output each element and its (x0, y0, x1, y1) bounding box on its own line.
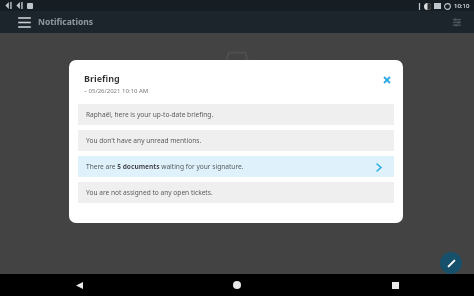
staticText: – 05/26/2021 10:10 AM (84, 87, 149, 95)
button[interactable]: Raphaël, here is your up-to-date briefin… (78, 104, 394, 125)
button[interactable]: Filter notifications (448, 13, 466, 31)
staticText: You don't have any unread mentions. (86, 136, 202, 145)
button[interactable]: You are not assigned to any open tickets… (78, 182, 394, 203)
staticText: Notifications (38, 16, 94, 28)
button[interactable]: Open navigation menu (14, 12, 34, 32)
button[interactable]: Compose (440, 252, 462, 274)
staticText: You are not assigned to any open tickets… (86, 188, 213, 197)
staticText: Briefing (84, 72, 120, 84)
button[interactable]: Home (158, 274, 316, 296)
button[interactable]: Back (0, 274, 158, 296)
button[interactable]: There are 5 documents waiting for your s… (78, 156, 394, 177)
staticText: 10:10 (454, 2, 470, 10)
button[interactable]: Recent apps (316, 274, 474, 296)
staticText: Raphaël, here is your up-to-date briefin… (86, 110, 214, 119)
button[interactable]: You don't have any unread mentions. (78, 130, 394, 151)
staticText: There are 5 documents waiting for your s… (86, 162, 244, 171)
button[interactable]: Close (379, 72, 395, 88)
